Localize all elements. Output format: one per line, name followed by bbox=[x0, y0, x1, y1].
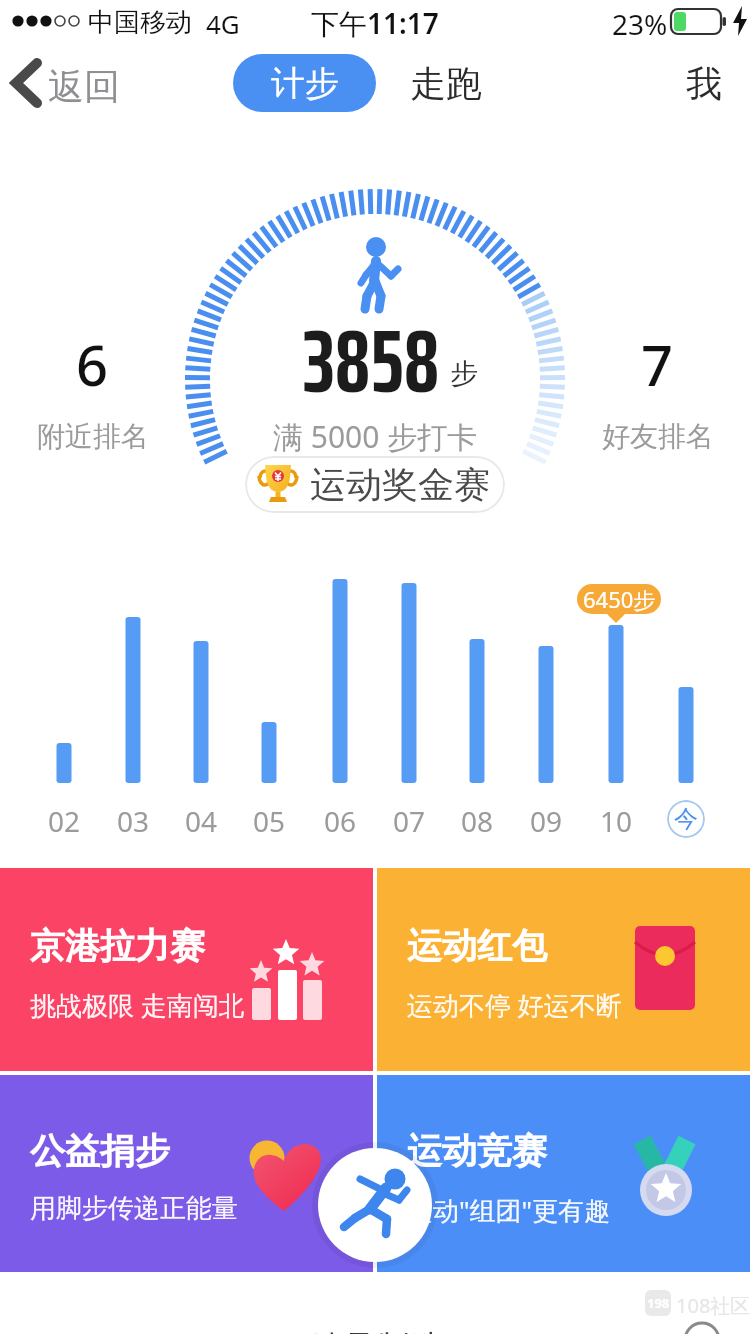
staticText: 精品制造 bbox=[308, 1327, 444, 1334]
staticText: 4G bbox=[206, 6, 240, 41]
staticText: 108社区 bbox=[676, 1292, 750, 1319]
button[interactable]: 运动红包 bbox=[377, 868, 750, 1071]
staticText: 05 bbox=[253, 802, 286, 840]
staticText: 公益捐步 bbox=[30, 1129, 170, 1173]
button[interactable]: 我 bbox=[668, 56, 740, 110]
staticText: 7 bbox=[641, 326, 674, 396]
staticText: 计步 bbox=[271, 62, 339, 105]
staticText: 23% bbox=[612, 5, 668, 43]
button[interactable] bbox=[318, 1148, 432, 1262]
button[interactable]: 走跑 bbox=[396, 56, 496, 110]
staticText: 挑战极限 走南闯北 bbox=[30, 987, 245, 1023]
staticText: 返回 bbox=[48, 64, 120, 109]
staticText: 中国移动 bbox=[88, 6, 192, 39]
staticText: 好友排名 bbox=[602, 419, 714, 454]
staticText: 04 bbox=[185, 802, 218, 840]
staticText: 运动红包 bbox=[407, 924, 547, 968]
staticText: 03 bbox=[117, 802, 150, 840]
staticText: 京港拉力赛 bbox=[30, 924, 205, 968]
staticText: 198 bbox=[647, 1294, 670, 1312]
staticText: 10 bbox=[600, 802, 633, 840]
staticText: 今 bbox=[674, 804, 698, 834]
button[interactable]: 京港拉力赛 bbox=[0, 868, 373, 1071]
staticText: 09 bbox=[530, 802, 563, 840]
staticText: 满 5000 步打卡 bbox=[273, 416, 478, 457]
staticText: 附近排名 bbox=[37, 419, 149, 454]
staticText: 3858 bbox=[303, 292, 440, 431]
button[interactable]: 返回 bbox=[0, 50, 130, 116]
button[interactable]: 运动竞赛 bbox=[377, 1075, 750, 1272]
button[interactable]: 运动奖金赛 bbox=[245, 456, 505, 513]
staticText: 08 bbox=[461, 802, 494, 840]
button[interactable]: 今 bbox=[667, 800, 705, 838]
staticText: 6 bbox=[76, 326, 109, 396]
staticText: 用脚步传递正能量 bbox=[30, 1192, 238, 1225]
staticText: 走跑 bbox=[410, 61, 482, 106]
staticText: 运动竞赛 bbox=[407, 1129, 547, 1173]
staticText: 运动不停 好运不断 bbox=[407, 987, 622, 1023]
staticText: 06 bbox=[324, 802, 357, 840]
button[interactable]: 公益捐步 bbox=[0, 1075, 373, 1272]
staticText: 我 bbox=[686, 61, 722, 106]
staticText: 07 bbox=[393, 802, 426, 840]
staticText: 6450步 bbox=[583, 584, 656, 614]
staticText: 下午11:17 bbox=[311, 4, 439, 42]
staticText: 运动"组团"更有趣 bbox=[407, 1192, 611, 1228]
staticText: 步 bbox=[450, 356, 478, 391]
staticText: 02 bbox=[48, 802, 81, 840]
staticText: 运动奖金赛 bbox=[310, 462, 490, 507]
button[interactable]: 计步 bbox=[233, 54, 376, 112]
